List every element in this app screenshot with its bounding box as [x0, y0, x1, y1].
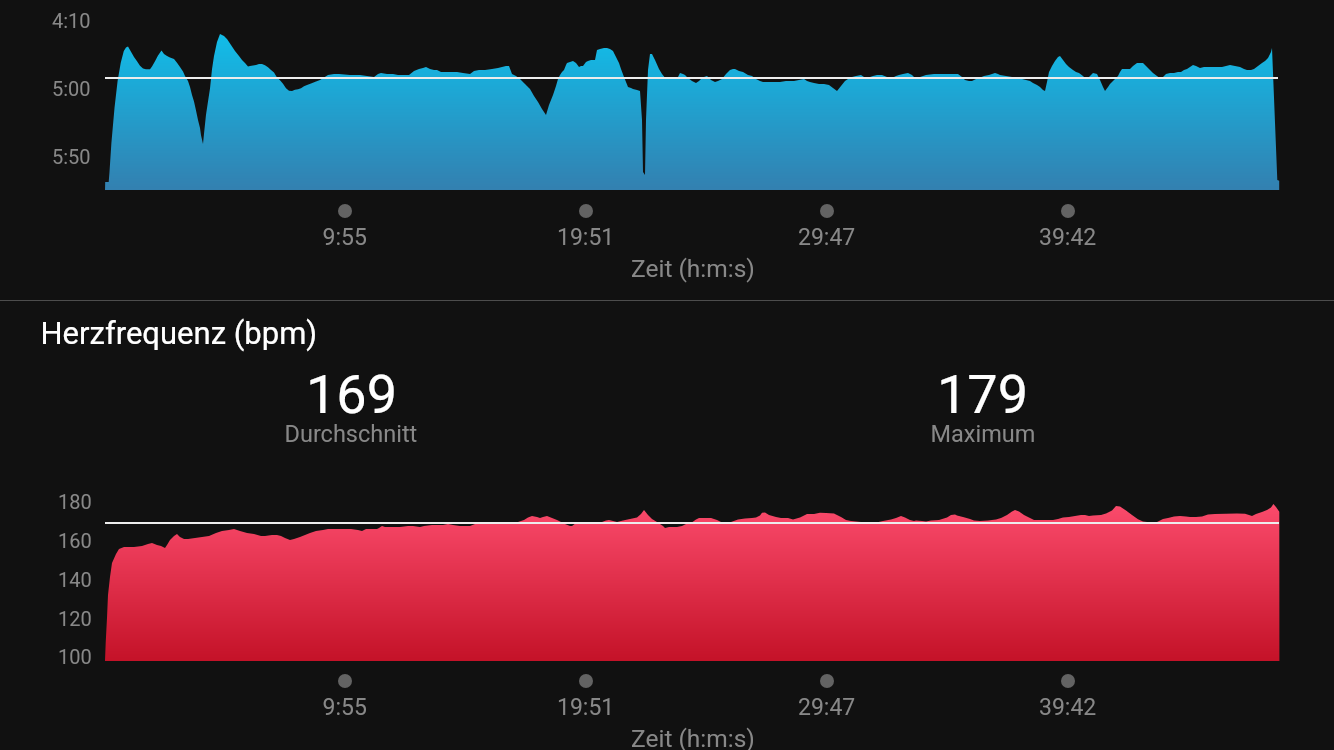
button[interactable]: Pace chart: [0, 0, 1334, 300]
button[interactable]: Heart rate chart: [0, 301, 1334, 750]
